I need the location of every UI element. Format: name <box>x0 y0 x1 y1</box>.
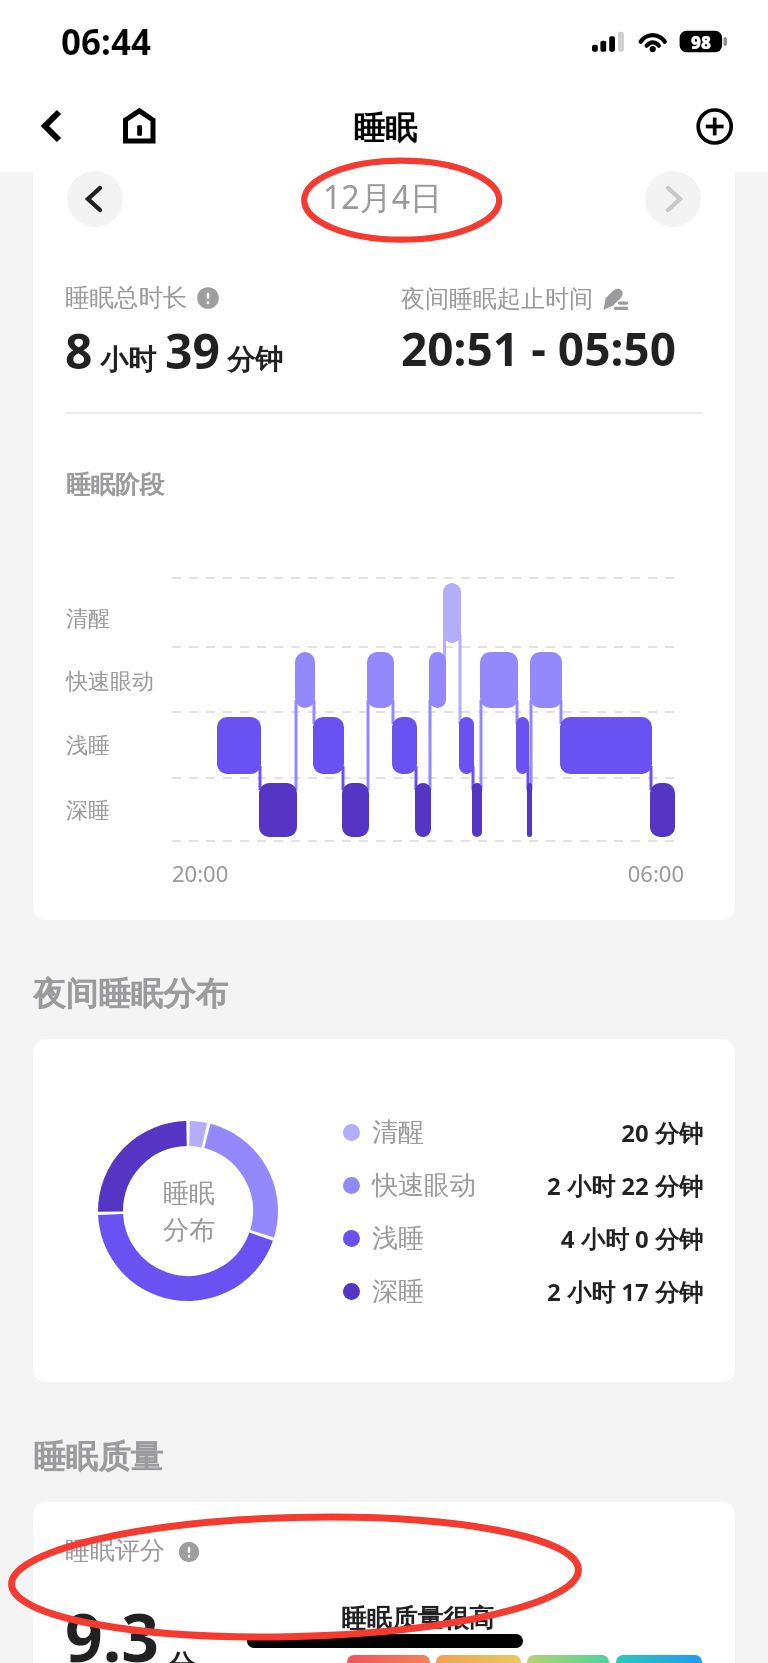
staticText: 20:00 <box>172 858 229 888</box>
staticText: 浅睡 <box>66 732 110 760</box>
button[interactable] <box>343 1212 703 1264</box>
staticText: 快速眼动 <box>66 668 154 696</box>
staticText: 夜间睡眠分布 <box>33 974 228 1015</box>
staticText: 睡眠 <box>353 108 417 148</box>
staticText: 39 <box>165 318 220 383</box>
staticText: 睡眠质量很高 <box>341 1602 494 1634</box>
staticText: 睡眠阶段 <box>66 469 164 500</box>
button[interactable]: Home <box>115 100 167 152</box>
staticText: 分 <box>168 1648 195 1663</box>
button[interactable]: Next day <box>645 171 701 227</box>
staticText: 睡眠质量 <box>33 1437 163 1478</box>
staticText: 小时 <box>100 342 156 377</box>
button[interactable] <box>343 1265 703 1317</box>
staticText: 8 <box>65 318 93 383</box>
staticText: 清醒 <box>66 605 110 633</box>
staticText: 睡眠总时长 <box>65 282 188 313</box>
staticText: 06:00 <box>627 858 684 888</box>
staticText: 分钟 <box>227 342 283 377</box>
staticText: 20:51 - 05:50 <box>401 317 676 380</box>
staticText: 清醒 <box>372 1116 424 1149</box>
staticText: 夜间睡眠起止时间 <box>401 284 593 314</box>
staticText: 2 小时 17 分钟 <box>547 1275 703 1308</box>
staticText: 睡眠评分 <box>65 1535 165 1566</box>
staticText: 睡眠 <box>163 1177 215 1210</box>
button[interactable] <box>343 1106 703 1158</box>
staticText: 9.3 <box>65 1591 160 1663</box>
staticText: 98 <box>691 31 711 54</box>
button[interactable]: Previous day <box>67 171 123 227</box>
staticText: 分布 <box>163 1214 215 1247</box>
staticText: 06:44 <box>61 18 151 66</box>
button[interactable]: Add <box>689 100 741 152</box>
staticText: 2 小时 22 分钟 <box>547 1169 703 1202</box>
staticText: 20 分钟 <box>621 1116 703 1149</box>
staticText: 深睡 <box>66 797 110 825</box>
staticText: 12月4日 <box>323 175 442 219</box>
staticText: 快速眼动 <box>372 1169 476 1202</box>
staticText: 4 小时 0 分钟 <box>560 1222 703 1255</box>
staticText: 浅睡 <box>372 1222 424 1255</box>
staticText: 深睡 <box>372 1275 424 1308</box>
button[interactable] <box>343 1159 703 1211</box>
button[interactable]: Back <box>24 100 76 152</box>
